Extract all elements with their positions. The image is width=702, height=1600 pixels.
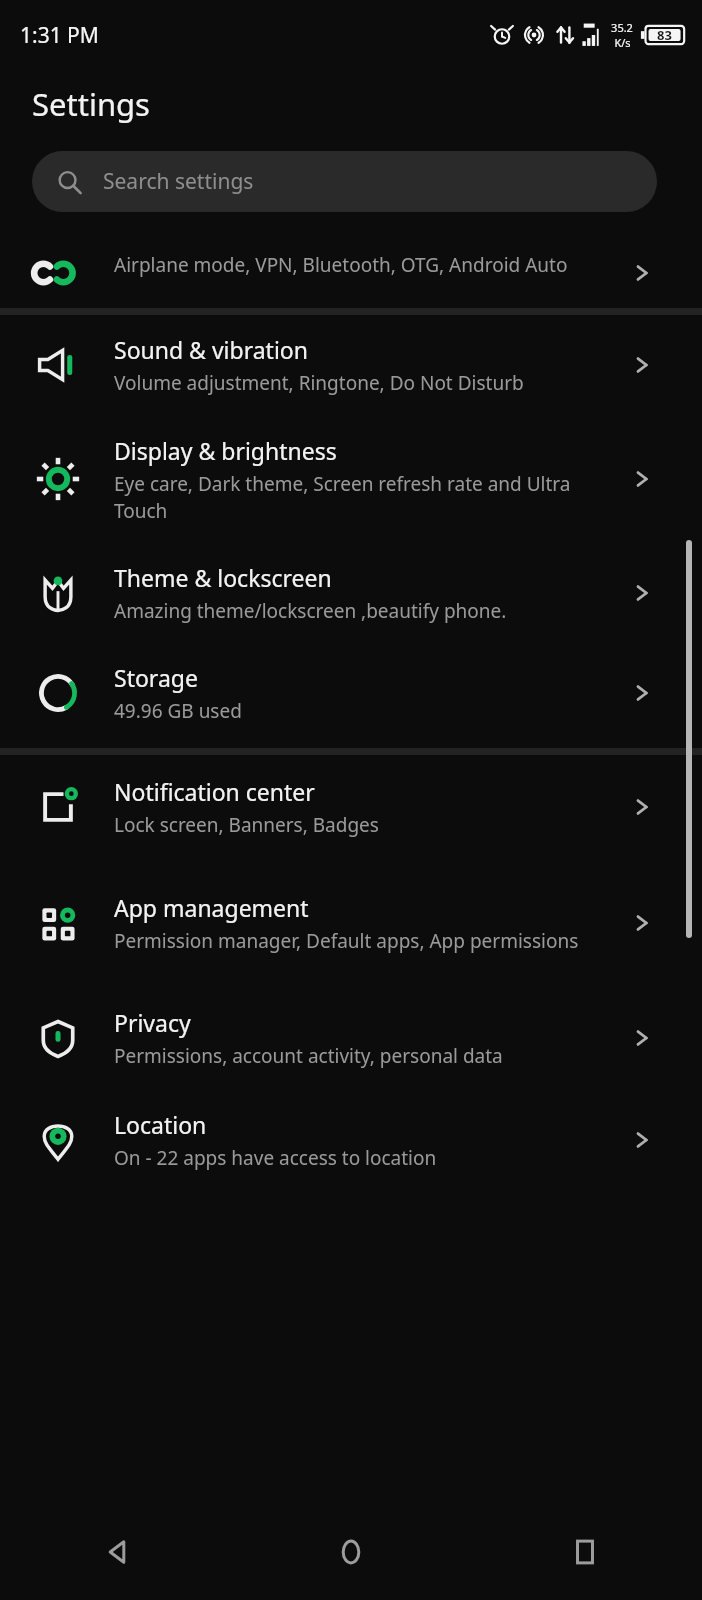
staticText: 35.2	[611, 20, 633, 35]
button[interactable]: Back	[0, 1504, 234, 1600]
button[interactable]: Home	[234, 1504, 468, 1600]
button[interactable]: Airplane mode, VPN, Bluetooth, OTG, Andr…	[0, 226, 702, 304]
staticText: App management	[114, 892, 309, 923]
staticText: Amazing theme/lockscreen ,beautify phone…	[114, 598, 507, 624]
button[interactable]: Theme & lockscreen	[0, 543, 702, 643]
button[interactable]: Sound & vibration	[0, 315, 702, 415]
staticText: Airplane mode, VPN, Bluetooth, OTG, Andr…	[114, 252, 568, 278]
staticText: K/s	[614, 35, 631, 50]
staticText: Settings	[32, 83, 150, 125]
button[interactable]: Search settings	[32, 151, 657, 212]
staticText: Privacy	[114, 1007, 191, 1038]
staticText: 49.96 GB used	[114, 698, 242, 724]
staticText: Volume adjustment, Ringtone, Do Not Dist…	[114, 370, 524, 396]
button[interactable]: Display & brightness	[0, 415, 702, 543]
staticText: Permissions, account activity, personal …	[114, 1043, 503, 1069]
staticText: Display & brightness	[114, 435, 337, 466]
staticText: Eye care, Dark theme, Screen refresh rat…	[114, 471, 622, 524]
staticText: 1:31 PM	[20, 21, 99, 50]
button[interactable]: Recent apps	[468, 1504, 702, 1600]
staticText: On - 22 apps have access to location	[114, 1145, 437, 1171]
staticText: 83	[657, 26, 672, 44]
button[interactable]: Storage	[0, 643, 702, 743]
staticText: Notification center	[114, 776, 315, 807]
staticText: Theme & lockscreen	[114, 562, 332, 593]
staticText: Sound & vibration	[114, 334, 308, 365]
button[interactable]: Privacy	[0, 987, 702, 1089]
staticText: Lock screen, Banners, Badges	[114, 812, 379, 838]
staticText: Location	[114, 1109, 207, 1140]
staticText: Search settings	[103, 167, 254, 196]
button[interactable]: App management	[0, 859, 702, 987]
staticText: Storage	[114, 662, 198, 693]
button[interactable]: Location	[0, 1089, 702, 1191]
button[interactable]: Notification center	[0, 755, 702, 859]
staticText: Permission manager, Default apps, App pe…	[114, 928, 579, 954]
